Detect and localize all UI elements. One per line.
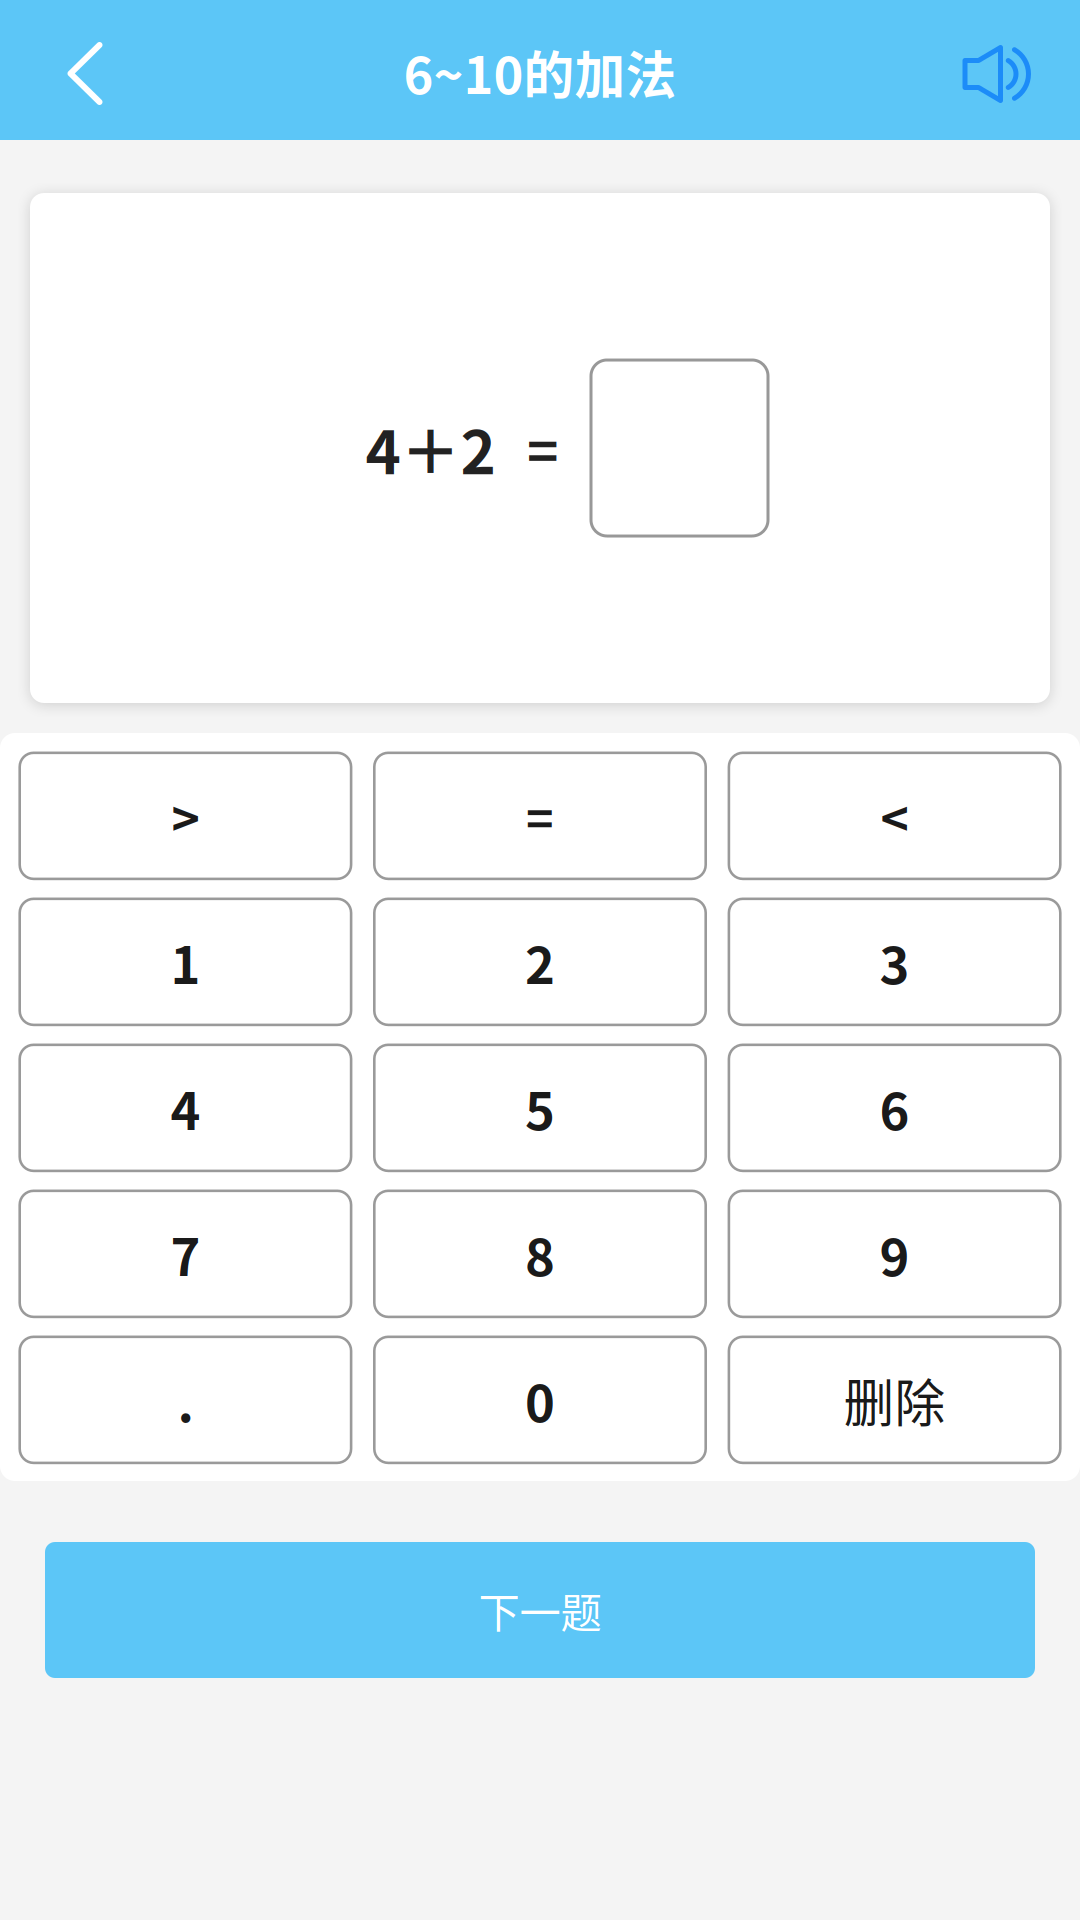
staticText: 2 [525, 925, 555, 999]
button[interactable]: 0 [373, 1335, 707, 1464]
staticText: 6 [880, 1071, 910, 1145]
staticText: 删除 [844, 1363, 946, 1437]
button[interactable]: < [728, 751, 1062, 880]
button[interactable]: . [18, 1335, 352, 1464]
staticText: 0 [525, 1363, 555, 1437]
staticText: 4 [170, 1071, 200, 1145]
button[interactable]: > [18, 751, 352, 880]
staticText: . [177, 1363, 193, 1437]
staticText: 7 [170, 1217, 200, 1291]
button[interactable]: 删除 [728, 1335, 1062, 1464]
staticText: 4＋2 [365, 405, 495, 491]
staticText: 下一题 [478, 1580, 601, 1640]
button[interactable]: 下一题 [45, 1542, 1035, 1678]
staticText: 6~10的加法 [403, 35, 676, 109]
button[interactable]: 2 [373, 897, 707, 1026]
button[interactable]: Back [0, 0, 170, 140]
button[interactable]: 9 [728, 1189, 1062, 1318]
button[interactable]: 8 [373, 1189, 707, 1318]
staticText: > [171, 781, 199, 851]
staticText: < [881, 781, 909, 851]
staticText: 8 [525, 1217, 555, 1291]
staticText: 5 [525, 1071, 555, 1145]
button[interactable]: 7 [18, 1189, 352, 1318]
staticText: = [527, 409, 558, 487]
button[interactable]: 6 [728, 1043, 1062, 1172]
staticText: = [526, 782, 554, 850]
button[interactable]: Play sound [912, 0, 1080, 140]
staticText: 9 [880, 1217, 910, 1291]
button[interactable]: 5 [373, 1043, 707, 1172]
button[interactable]: = [373, 751, 707, 880]
button[interactable]: 3 [728, 897, 1062, 1026]
staticText: 3 [880, 925, 910, 999]
button[interactable]: 4 [18, 1043, 352, 1172]
button[interactable]: 1 [18, 897, 352, 1026]
staticText: 1 [170, 925, 200, 999]
